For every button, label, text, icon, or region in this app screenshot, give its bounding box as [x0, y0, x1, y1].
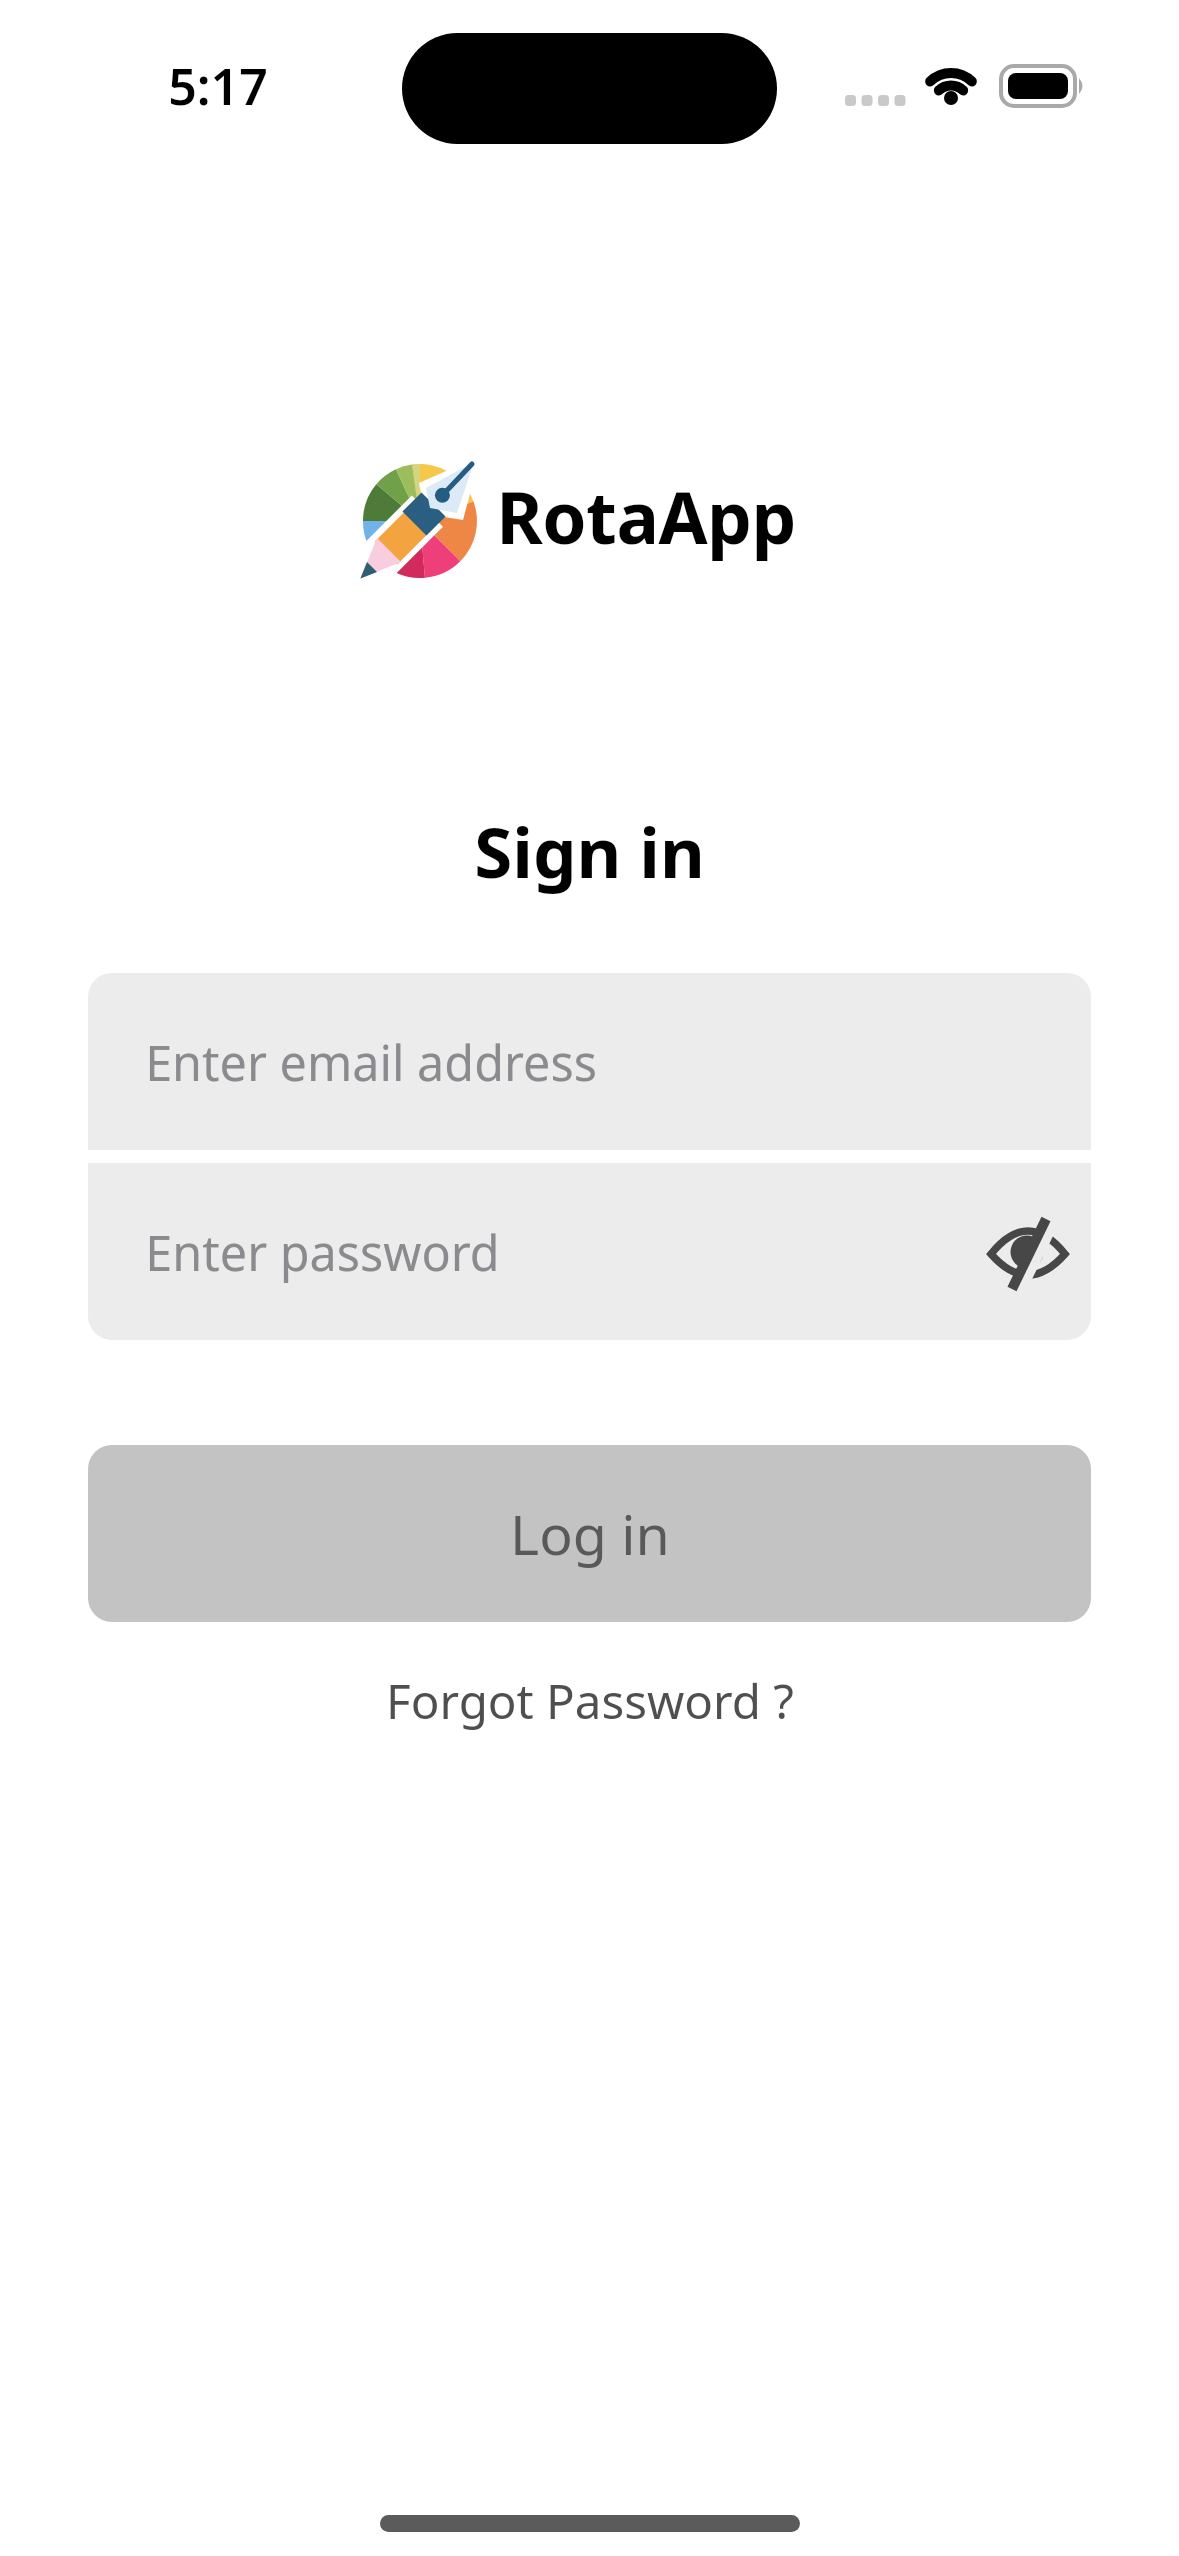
button[interactable]: Enter email address [88, 973, 1091, 1150]
staticText: Sign in [474, 804, 705, 898]
staticText: Enter password [145, 1219, 500, 1285]
staticText: Log in [510, 1496, 670, 1572]
button[interactable] [983, 1207, 1073, 1297]
staticText: Enter email address [145, 1029, 597, 1095]
button[interactable]: Enter password [88, 1163, 1091, 1340]
staticText: 5:17 [168, 52, 268, 120]
button[interactable]: Forgot Password ? [376, 1662, 804, 1739]
staticText: Forgot Password ? [386, 1668, 794, 1733]
button[interactable]: Log in [88, 1445, 1091, 1622]
staticText: RotaApp [496, 468, 796, 565]
